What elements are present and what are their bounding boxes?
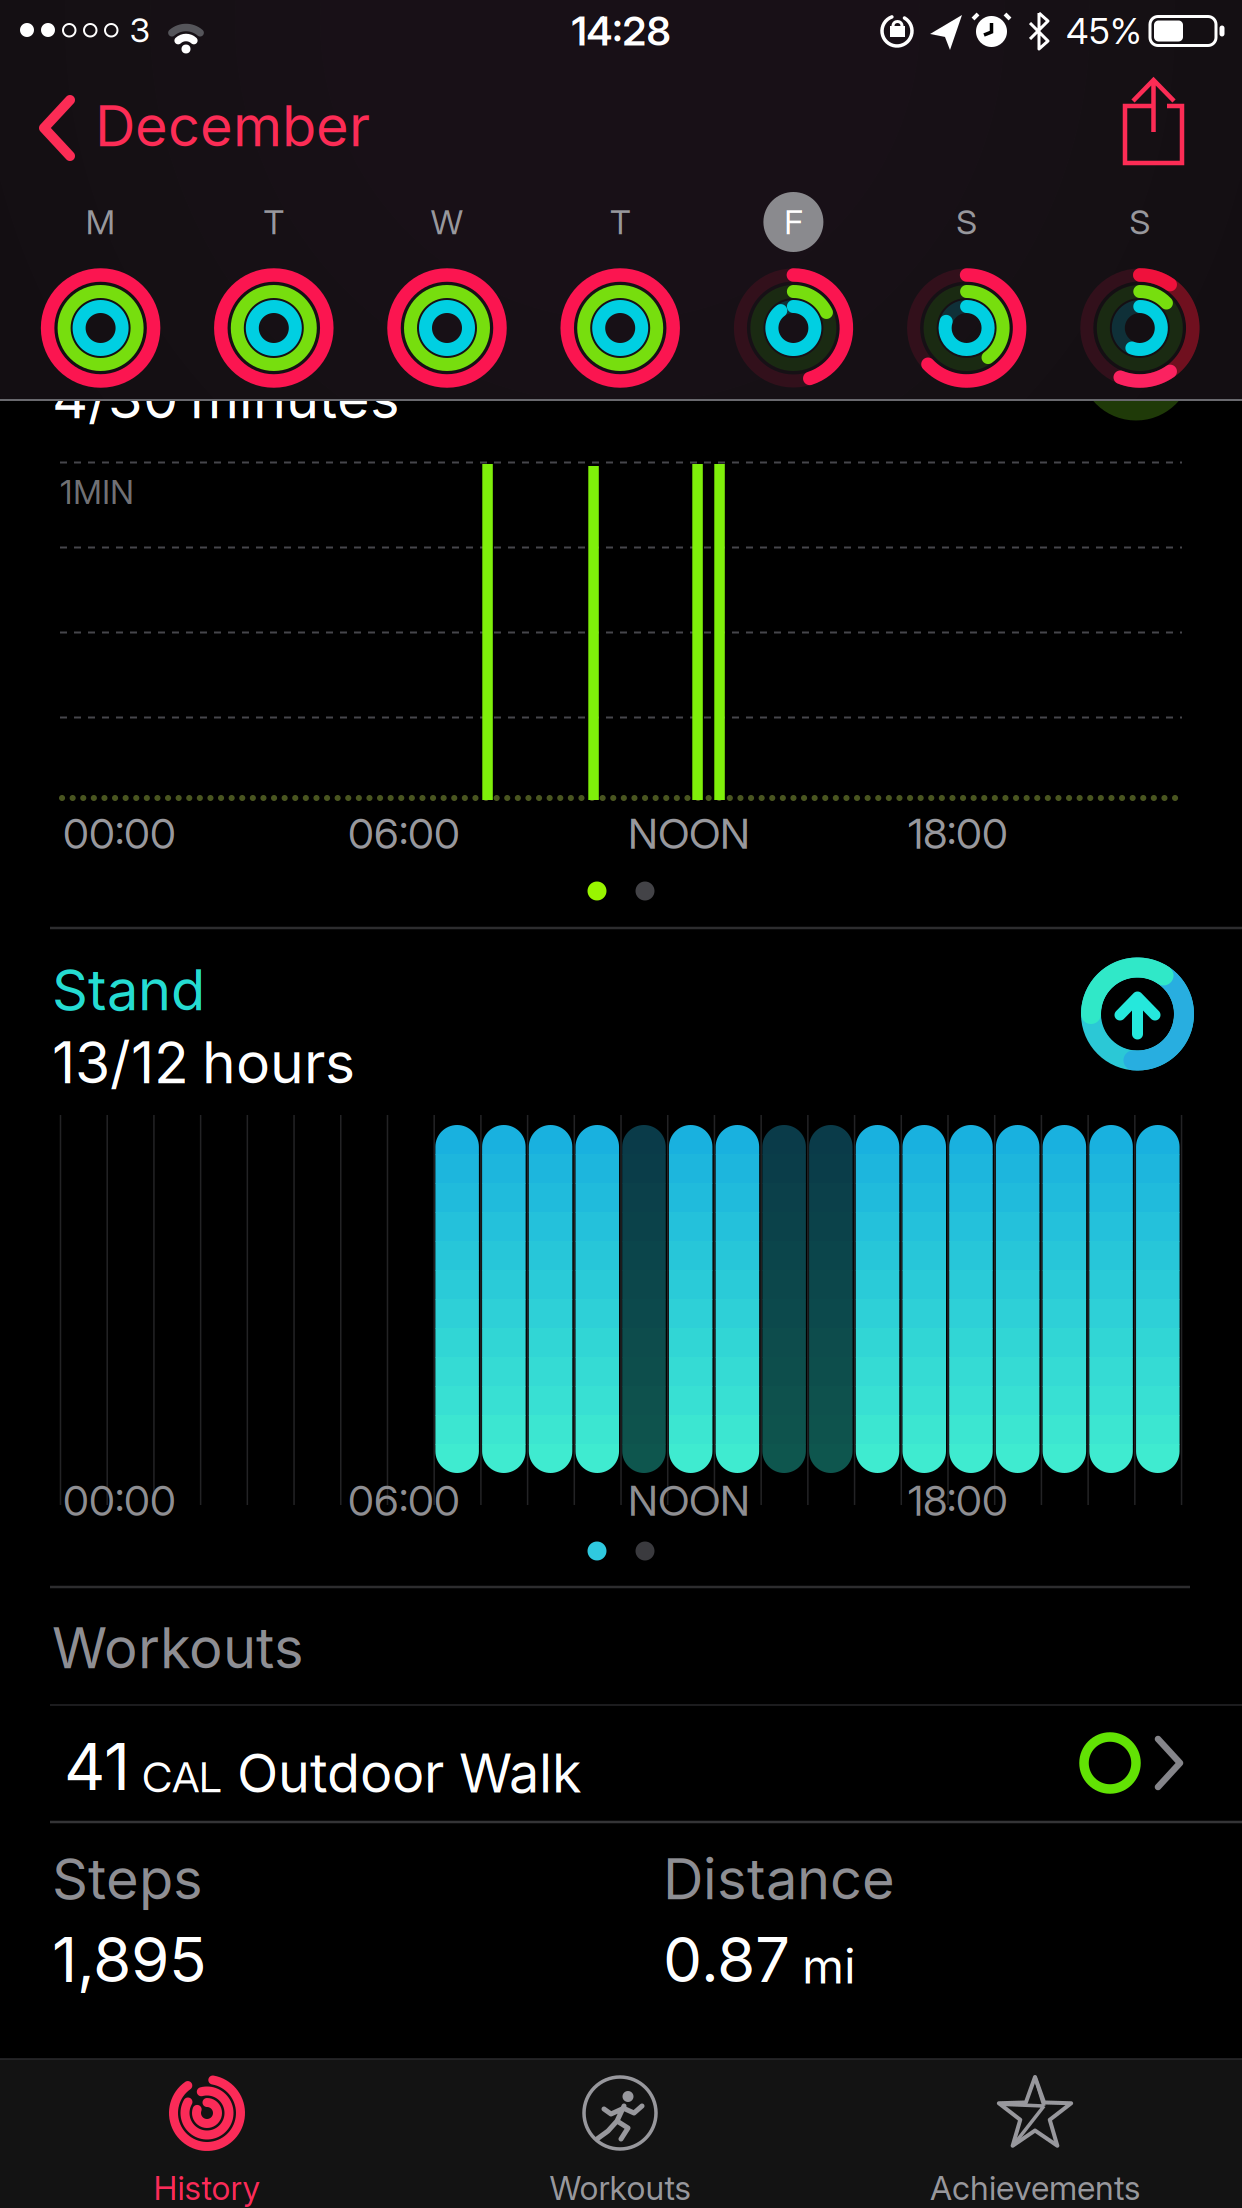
staticText: Outdoor Walk <box>237 1740 582 1805</box>
staticText: 45% <box>1066 9 1142 53</box>
button[interactable]: T <box>187 180 360 395</box>
button[interactable]: T <box>534 180 707 395</box>
staticText: 06:00 <box>348 1475 460 1526</box>
staticText: 13/12 <box>52 1028 189 1097</box>
staticText: NOON <box>628 808 750 859</box>
staticText: Workouts <box>52 1614 304 1682</box>
button[interactable]: Share <box>1123 63 1185 173</box>
staticText: T <box>263 201 284 242</box>
staticText: S <box>1129 201 1150 242</box>
staticText: T <box>610 201 631 242</box>
button[interactable]: M <box>14 180 187 395</box>
staticText: 18:00 <box>908 808 1008 859</box>
staticText: mi <box>802 1937 856 1995</box>
staticText: NOON <box>628 1475 750 1526</box>
button[interactable]: F <box>707 180 880 395</box>
button[interactable]: 41 <box>0 1706 1242 1822</box>
staticText: December <box>95 92 370 160</box>
staticText: Workouts <box>549 2168 690 2208</box>
button[interactable]: Workouts <box>470 2059 770 2208</box>
staticText: Stand <box>52 956 205 1024</box>
staticText: W <box>430 201 463 242</box>
staticText: 18:00 <box>908 1475 1008 1526</box>
staticText: Distance <box>663 1845 895 1913</box>
staticText: 1MIN <box>60 472 134 512</box>
staticText: Steps <box>52 1845 203 1913</box>
staticText: 3 <box>129 9 150 50</box>
button[interactable]: S <box>1053 180 1226 395</box>
staticText: 00:00 <box>63 808 176 859</box>
staticText: 14:28 <box>571 7 670 55</box>
staticText: F <box>784 201 803 242</box>
button[interactable]: S <box>880 180 1053 395</box>
button[interactable]: W <box>360 180 534 395</box>
staticText: S <box>956 201 977 242</box>
staticText: M <box>86 201 116 242</box>
staticText: hours <box>202 1028 355 1097</box>
staticText: 06:00 <box>348 808 460 859</box>
staticText: 4/30 <box>52 364 178 432</box>
staticText: 1,895 <box>52 1922 207 1997</box>
staticText: minutes <box>190 364 400 432</box>
staticText: CAL <box>142 1752 222 1802</box>
staticText: History <box>153 2168 260 2208</box>
button[interactable]: December <box>30 85 460 171</box>
button[interactable]: Achievements <box>885 2059 1185 2208</box>
staticText: 00:00 <box>63 1475 176 1526</box>
staticText: 41 <box>64 1728 130 1805</box>
staticText: 0.87 <box>663 1922 790 1997</box>
staticText: Achievements <box>930 2168 1140 2208</box>
button[interactable]: History <box>57 2059 357 2208</box>
